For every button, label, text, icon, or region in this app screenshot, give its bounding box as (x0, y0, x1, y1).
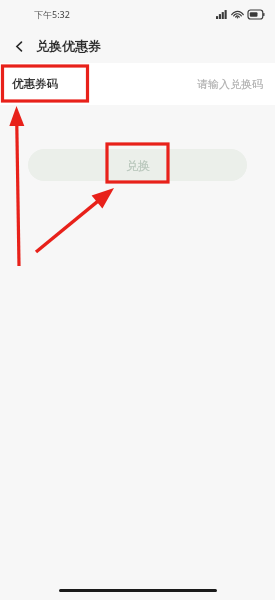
staticText: 下午5:32 (34, 8, 70, 20)
button[interactable]: 兑换 (28, 149, 247, 181)
button[interactable]: 优惠券码 (0, 63, 275, 105)
staticText: 优惠券码 (12, 77, 58, 91)
staticText: 请输入兑换码 (197, 77, 263, 91)
staticText: 兑换 (126, 158, 150, 173)
button[interactable]: Back (6, 33, 32, 59)
staticText: 兑换优惠券 (36, 38, 101, 54)
